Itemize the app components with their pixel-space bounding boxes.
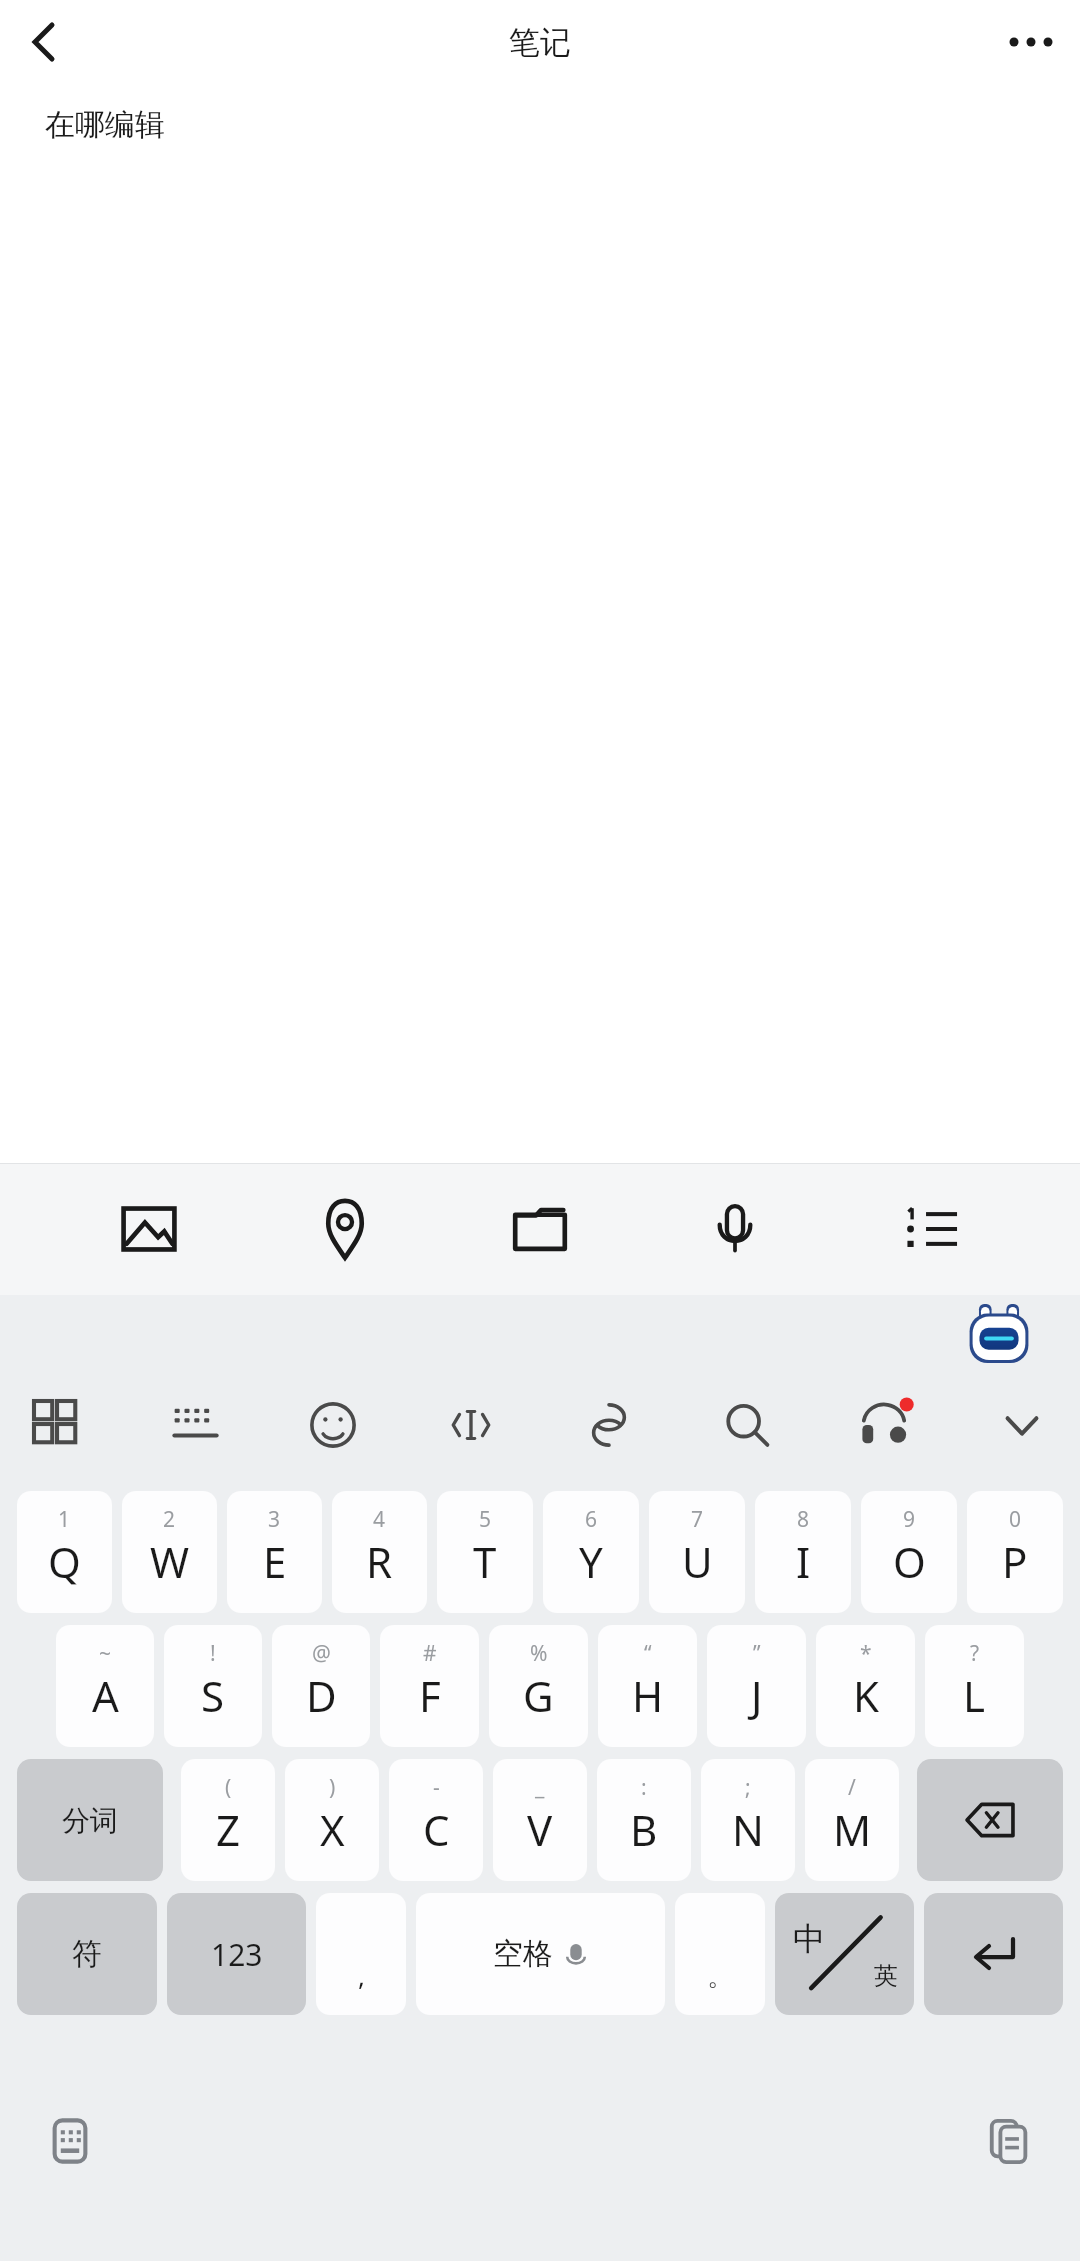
button[interactable]: Switch Chinese English <box>775 1893 914 2015</box>
button[interactable]: Clipboard <box>571 1387 647 1463</box>
button[interactable]: / <box>805 1759 899 1881</box>
button[interactable]: List <box>885 1183 977 1275</box>
button[interactable]: 123 <box>167 1893 306 2015</box>
button[interactable]: Files <box>494 1183 586 1275</box>
button[interactable]: Switch keyboard <box>30 2101 110 2181</box>
staticText: Y <box>579 1533 603 1590</box>
staticText: 4 <box>373 1505 386 1534</box>
button[interactable]: @ <box>272 1625 370 1747</box>
staticText: - <box>433 1773 440 1802</box>
button[interactable]: “ <box>598 1625 697 1747</box>
staticText: F <box>419 1667 441 1724</box>
staticText: E <box>263 1533 287 1590</box>
staticText: T <box>473 1533 497 1590</box>
staticText: 空格 <box>493 1935 553 1973</box>
button[interactable]: ! <box>164 1625 262 1747</box>
staticText: ) <box>329 1773 336 1802</box>
button[interactable]: Panels <box>20 1387 96 1463</box>
button[interactable]: , <box>316 1893 406 2015</box>
button[interactable]: 0 <box>967 1491 1063 1613</box>
staticText: ( <box>225 1773 232 1802</box>
staticText: 8 <box>797 1505 810 1534</box>
staticText: 笔记 <box>509 23 571 62</box>
button[interactable]: : <box>597 1759 691 1881</box>
staticText: R <box>366 1533 393 1590</box>
button[interactable]: More options <box>996 7 1066 77</box>
button[interactable]: # <box>380 1625 479 1747</box>
staticText: S <box>201 1667 225 1724</box>
button[interactable]: Emoji <box>295 1387 371 1463</box>
staticText: 0 <box>1009 1505 1022 1534</box>
button[interactable]: Insert image <box>103 1183 195 1275</box>
button[interactable]: Backspace <box>917 1759 1063 1881</box>
staticText: P <box>1002 1533 1028 1590</box>
button[interactable]: Back <box>8 7 78 77</box>
button[interactable]: ? <box>925 1625 1024 1747</box>
staticText: 中 <box>793 1919 825 1959</box>
staticText: 7 <box>691 1505 704 1534</box>
button[interactable]: 9 <box>861 1491 957 1613</box>
button[interactable]: * <box>816 1625 915 1747</box>
staticText: ! <box>210 1639 216 1668</box>
staticText: H <box>632 1667 664 1724</box>
staticText: 分词 <box>62 1803 118 1838</box>
button[interactable]: 4 <box>332 1491 427 1613</box>
staticText: 在哪编辑 <box>45 106 165 144</box>
button[interactable]: Cursor <box>433 1387 509 1463</box>
button[interactable]: 分词 <box>17 1759 163 1881</box>
button[interactable]: Keyboard layout <box>158 1387 234 1463</box>
staticText: : <box>641 1773 647 1802</box>
button[interactable]: Hide keyboard <box>984 1387 1060 1463</box>
button[interactable]: Clipboard history <box>970 2101 1050 2181</box>
staticText: 。 <box>707 1960 733 1993</box>
button[interactable]: ( <box>181 1759 275 1881</box>
button[interactable]: ” <box>707 1625 806 1747</box>
button[interactable]: 3 <box>227 1491 322 1613</box>
button[interactable]: Location <box>299 1183 391 1275</box>
staticText: _ <box>535 1773 545 1802</box>
button[interactable]: Assistant <box>963 1299 1035 1371</box>
button[interactable]: ) <box>285 1759 379 1881</box>
button[interactable]: 。 <box>675 1893 765 2015</box>
staticText: 2 <box>163 1505 176 1534</box>
button[interactable]: 1 <box>17 1491 112 1613</box>
staticText: V <box>527 1801 553 1858</box>
button[interactable]: % <box>489 1625 588 1747</box>
staticText: D <box>306 1667 337 1724</box>
staticText: # <box>423 1639 437 1668</box>
button[interactable]: 8 <box>755 1491 851 1613</box>
button[interactable]: Voice <box>689 1183 781 1275</box>
staticText: 5 <box>479 1505 492 1534</box>
button[interactable]: Enter <box>924 1893 1063 2015</box>
staticText: 6 <box>585 1505 598 1534</box>
staticText: K <box>853 1667 879 1724</box>
button[interactable]: 符 <box>17 1893 157 2015</box>
staticText: 9 <box>903 1505 916 1534</box>
button[interactable]: _ <box>493 1759 587 1881</box>
button[interactable]: 7 <box>649 1491 745 1613</box>
staticText: Z <box>216 1801 241 1858</box>
button[interactable]: 2 <box>122 1491 217 1613</box>
staticText: I <box>796 1533 811 1590</box>
staticText: M <box>833 1801 872 1858</box>
button[interactable]: Translate <box>846 1387 922 1463</box>
staticText: O <box>893 1533 926 1590</box>
staticText: X <box>320 1801 345 1858</box>
staticText: ” <box>753 1639 761 1668</box>
staticText: J <box>751 1667 763 1724</box>
staticText: / <box>848 1773 856 1802</box>
button[interactable]: ; <box>701 1759 795 1881</box>
button[interactable]: 空格 <box>416 1893 665 2015</box>
staticText: ? <box>970 1639 980 1668</box>
button[interactable]: 5 <box>437 1491 533 1613</box>
button[interactable]: - <box>389 1759 483 1881</box>
button[interactable]: ~ <box>56 1625 154 1747</box>
staticText: W <box>150 1533 190 1590</box>
staticText: 123 <box>211 1934 263 1975</box>
staticText: @ <box>312 1639 331 1668</box>
button[interactable]: Search <box>709 1387 785 1463</box>
staticText: 符 <box>72 1935 102 1973</box>
staticText: N <box>732 1801 764 1858</box>
staticText: , <box>358 1958 365 1993</box>
button[interactable]: 6 <box>543 1491 639 1613</box>
